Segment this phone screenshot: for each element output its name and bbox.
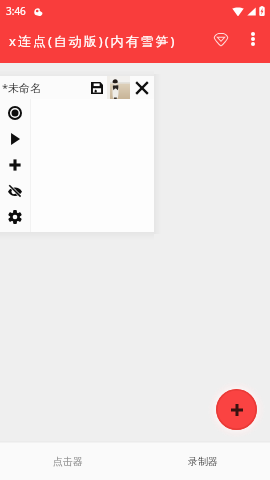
button[interactable]: 点击器	[0, 443, 135, 480]
button[interactable]: Close	[130, 76, 153, 99]
staticText: *未命名	[2, 80, 42, 95]
button[interactable]: Settings	[0, 204, 30, 230]
button[interactable]: Preview	[107, 76, 130, 99]
button[interactable]: Add	[216, 389, 257, 430]
button[interactable]: Hide	[0, 178, 30, 204]
staticText: 3:46	[6, 4, 26, 18]
button[interactable]: 录制器	[135, 443, 270, 480]
staticText: x连点(自动版)(内有雪笋)	[9, 32, 177, 50]
button[interactable]: Add step	[0, 152, 30, 178]
button[interactable]: Premium	[207, 25, 235, 53]
button[interactable]: Save	[85, 76, 108, 99]
staticText: 点击器	[53, 455, 83, 468]
button[interactable]: More options	[239, 25, 267, 53]
button[interactable]: Record	[0, 100, 30, 126]
staticText: 录制器	[188, 455, 218, 468]
button[interactable]: Play	[0, 126, 30, 152]
